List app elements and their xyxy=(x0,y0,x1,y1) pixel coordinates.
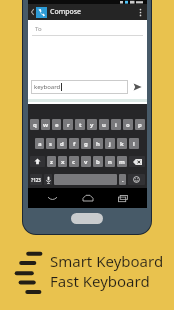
button[interactable]: g xyxy=(81,138,91,149)
button[interactable]: j xyxy=(105,138,115,149)
staticText: w xyxy=(43,121,49,129)
staticText: s xyxy=(49,140,53,148)
staticText: ?123 xyxy=(31,177,41,183)
button[interactable]: l xyxy=(129,138,139,149)
staticText: y xyxy=(90,121,94,129)
staticText: t xyxy=(79,121,82,129)
staticText: i xyxy=(115,121,117,129)
button[interactable]: e xyxy=(52,119,61,130)
button[interactable]: keyboard xyxy=(31,80,128,94)
button[interactable]: h xyxy=(93,138,103,149)
staticText: p xyxy=(138,121,142,129)
button[interactable]: o xyxy=(123,119,133,130)
button[interactable]: k xyxy=(117,138,127,149)
button[interactable]: w xyxy=(41,119,50,130)
staticText: v xyxy=(84,158,88,166)
button[interactable]: c xyxy=(69,156,79,167)
staticText: j xyxy=(109,140,111,148)
staticText: m xyxy=(119,158,125,166)
staticText: To xyxy=(35,25,42,33)
button[interactable]: . xyxy=(119,174,126,185)
button[interactable]: p xyxy=(135,119,145,130)
button[interactable]: f xyxy=(69,138,79,149)
button[interactable]: d xyxy=(57,138,67,149)
button[interactable]: Shift xyxy=(30,156,45,167)
staticText: b xyxy=(96,158,100,166)
button[interactable]: t xyxy=(75,119,85,130)
button[interactable]: Back xyxy=(28,4,147,20)
staticText: l xyxy=(133,140,135,148)
button[interactable]: Symbols xyxy=(30,174,42,185)
button[interactable]: y xyxy=(87,119,97,130)
staticText: r xyxy=(67,121,70,129)
button[interactable]: z xyxy=(47,156,56,167)
button[interactable]: n xyxy=(105,156,115,167)
button[interactable]: Back xyxy=(41,188,63,208)
staticText: . xyxy=(122,176,124,184)
staticText: Smart Keyboard xyxy=(50,251,164,271)
staticText: keyboard xyxy=(34,83,61,91)
button[interactable]: More options xyxy=(136,4,145,20)
staticText: x xyxy=(61,158,65,166)
staticText: d xyxy=(60,140,64,148)
button[interactable]: q xyxy=(30,119,39,130)
staticText: o xyxy=(126,121,130,129)
button[interactable]: s xyxy=(46,138,55,149)
staticText: Fast Keyboard xyxy=(50,271,150,291)
staticText: n xyxy=(108,158,112,166)
staticText: u xyxy=(102,121,106,129)
button[interactable]: r xyxy=(63,119,73,130)
staticText: z xyxy=(50,158,53,166)
button[interactable]: Backspace xyxy=(129,156,145,167)
button[interactable]: Emoji xyxy=(128,174,145,185)
button[interactable]: v xyxy=(81,156,91,167)
button[interactable]: u xyxy=(99,119,109,130)
staticText: q xyxy=(33,121,37,129)
button[interactable]: Home xyxy=(77,188,99,208)
button[interactable]: Recent apps xyxy=(112,188,134,208)
button[interactable]: m xyxy=(117,156,127,167)
staticText: h xyxy=(96,140,100,148)
button[interactable]: To xyxy=(32,23,143,35)
staticText: g xyxy=(84,140,88,148)
button[interactable]: Send xyxy=(130,80,144,94)
button[interactable]: a xyxy=(35,138,44,149)
staticText: k xyxy=(120,140,124,148)
button[interactable]: Voice input xyxy=(44,174,52,185)
staticText: Compose xyxy=(50,7,82,17)
other: Back xyxy=(30,4,35,20)
button[interactable]: i xyxy=(111,119,121,130)
button[interactable]: b xyxy=(93,156,103,167)
staticText: f xyxy=(73,140,76,148)
staticText: e xyxy=(55,121,59,129)
button[interactable]: x xyxy=(58,156,67,167)
staticText: c xyxy=(72,158,76,166)
staticText: a xyxy=(38,140,42,148)
